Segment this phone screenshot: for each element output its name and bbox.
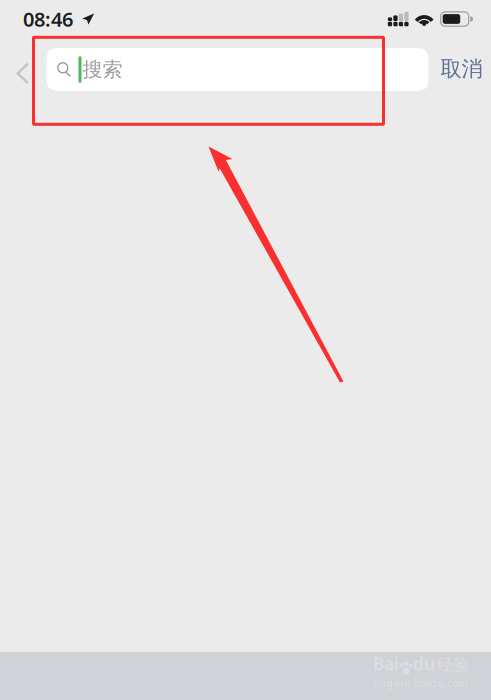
- button[interactable]: Back: [7, 51, 37, 95]
- button[interactable]: 取消: [432, 47, 490, 91]
- staticText: jingyan.baidu.com: [373, 676, 468, 690]
- button[interactable]: Search: [46, 48, 428, 91]
- staticText: 搜索: [82, 57, 122, 82]
- staticText: 取消: [440, 56, 482, 82]
- staticText: du: [413, 652, 435, 675]
- staticText: Bai: [373, 652, 399, 675]
- staticText: 经验: [437, 655, 469, 675]
- staticText: 08:46: [23, 6, 73, 32]
